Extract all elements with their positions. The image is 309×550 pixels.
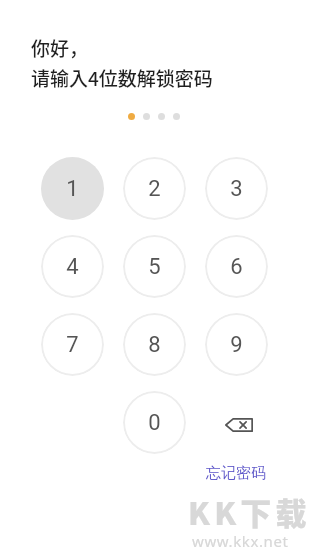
staticText: 请输入4位数解锁密码 xyxy=(31,64,213,92)
button[interactable]: 7 xyxy=(41,313,104,376)
staticText: 9 xyxy=(230,332,243,358)
button[interactable]: 8 xyxy=(123,313,186,376)
staticText: 7 xyxy=(66,332,79,358)
staticText: 忘记密码 xyxy=(206,464,266,483)
button[interactable]: 3 xyxy=(205,157,268,220)
staticText: 1 xyxy=(66,176,79,202)
button[interactable]: 6 xyxy=(205,235,268,298)
button[interactable]: 9 xyxy=(205,313,268,376)
button[interactable]: 5 xyxy=(123,235,186,298)
button[interactable]: 忘记密码 xyxy=(196,456,276,491)
button[interactable]: 4 xyxy=(41,235,104,298)
staticText: 5 xyxy=(148,254,161,280)
staticText: www.kkx.net xyxy=(192,531,289,550)
staticText: 8 xyxy=(148,332,161,358)
staticText: 0 xyxy=(148,410,161,436)
button[interactable]: 1 xyxy=(41,157,104,220)
staticText: 6 xyxy=(230,254,243,280)
staticText: KK下载 xyxy=(188,489,309,534)
button[interactable]: Backspace xyxy=(205,391,268,454)
staticText: 你好， xyxy=(31,34,89,62)
staticText: 2 xyxy=(148,176,161,202)
staticText: 4 xyxy=(66,254,79,280)
staticText: 3 xyxy=(230,176,243,202)
button[interactable]: 0 xyxy=(123,391,186,454)
button[interactable]: 2 xyxy=(123,157,186,220)
